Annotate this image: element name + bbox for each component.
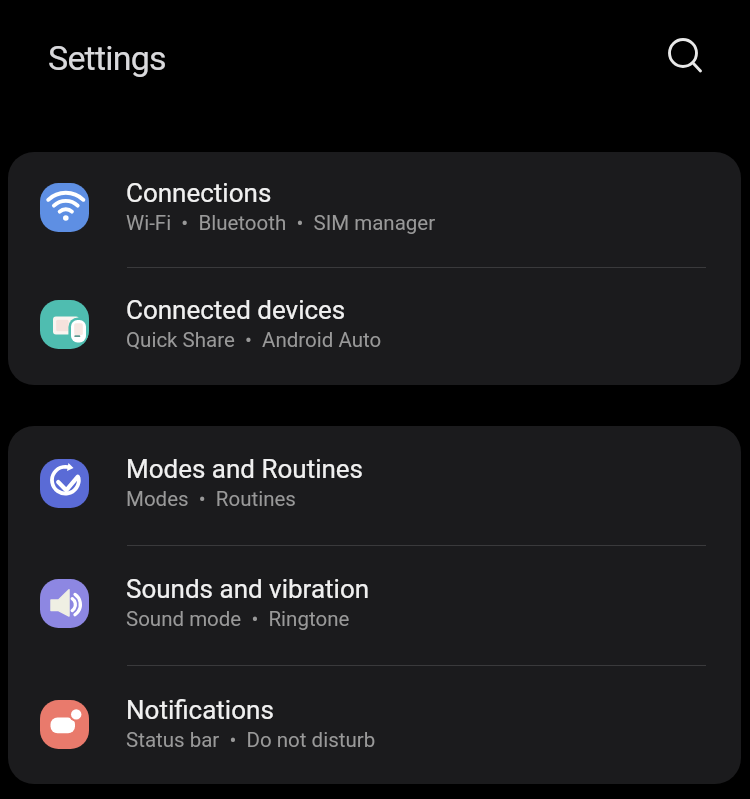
staticText: Wi-Fi • Bluetooth • SIM manager bbox=[126, 211, 436, 235]
staticText: Connections bbox=[126, 178, 272, 208]
staticText: Sounds and vibration bbox=[126, 574, 370, 604]
staticText: Modes • Routines bbox=[126, 487, 296, 511]
staticText: Notifications bbox=[126, 695, 274, 725]
staticText: Modes and Routines bbox=[126, 454, 364, 484]
staticText: Status bar • Do not disturb bbox=[126, 728, 376, 752]
staticText: Settings bbox=[48, 38, 166, 78]
staticText: Quick Share • Android Auto bbox=[126, 328, 382, 352]
staticText: Connected devices bbox=[126, 295, 346, 325]
staticText: Sound mode • Ringtone bbox=[126, 607, 350, 631]
